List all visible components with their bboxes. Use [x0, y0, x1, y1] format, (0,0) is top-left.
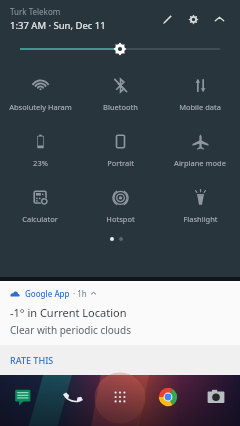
- staticText: Hotspot: [106, 214, 135, 224]
- button[interactable]: Mobile data: [160, 74, 240, 114]
- staticText: Airplane mode: [174, 158, 226, 168]
- button[interactable]: Edit: [154, 6, 180, 32]
- button[interactable]: Bluetooth: [80, 74, 160, 114]
- staticText: Google App: [25, 288, 70, 299]
- staticText: Flashlight: [183, 214, 218, 224]
- button[interactable]: Chrome: [154, 383, 182, 411]
- button[interactable]: Airplane mode: [160, 130, 240, 170]
- button[interactable]: Portrait: [80, 130, 160, 170]
- staticText: Turk Telekom: [10, 6, 61, 17]
- staticText: Absolutely Haram: [9, 102, 72, 112]
- button[interactable]: Hotspot: [80, 186, 160, 226]
- staticText: Mobile data: [179, 102, 221, 112]
- button[interactable]: Brightness: [0, 38, 240, 60]
- button[interactable]: Collapse: [206, 6, 232, 32]
- staticText: RATE THIS: [10, 354, 54, 366]
- staticText: Bluetooth: [103, 102, 138, 112]
- staticText: Clear with periodic clouds: [10, 323, 131, 337]
- staticText: -1° in Current Location: [10, 305, 127, 320]
- button[interactable]: Flashlight: [160, 186, 240, 226]
- button[interactable]: Apps: [106, 383, 134, 411]
- button[interactable]: 23%: [0, 130, 80, 170]
- button[interactable]: Messages: [10, 383, 38, 411]
- staticText: Calculator: [22, 214, 58, 224]
- staticText: · 1h: [73, 288, 87, 299]
- button[interactable]: Settings: [180, 6, 206, 32]
- button[interactable]: Calculator: [0, 186, 80, 226]
- staticText: Portrait: [107, 158, 134, 168]
- button[interactable]: Camera: [202, 383, 230, 411]
- button[interactable]: RATE THIS: [0, 345, 240, 375]
- button[interactable]: Absolutely Haram: [0, 74, 80, 114]
- button[interactable]: Phone: [58, 383, 86, 411]
- staticText: 1:37 AM · Sun, Dec 11: [10, 19, 106, 32]
- staticText: 23%: [33, 158, 48, 168]
- button[interactable]: Google App: [0, 281, 240, 345]
